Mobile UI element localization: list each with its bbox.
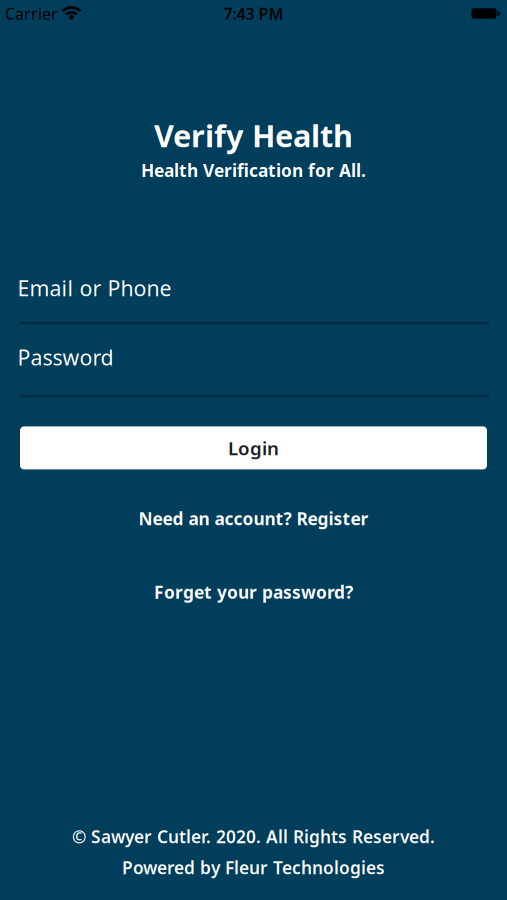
- staticText: Carrier: [5, 3, 58, 24]
- button[interactable]: Login: [0, 426, 507, 469]
- staticText: 7:43 PM: [223, 3, 283, 24]
- staticText: © Sawyer Cutler. 2020. All Rights Reserv…: [72, 825, 435, 848]
- staticText: Verify Health: [154, 115, 353, 156]
- button[interactable]: Email or Phone: [0, 274, 507, 325]
- staticText: Password: [17, 343, 113, 371]
- staticText: Login: [228, 435, 279, 460]
- staticText: Forget your password?: [154, 580, 353, 603]
- button[interactable]: Need an account? Register: [138, 507, 368, 530]
- staticText: Powered by Fleur Technologies: [122, 856, 385, 879]
- button[interactable]: Password: [0, 343, 507, 398]
- staticText: Need an account? Register: [138, 507, 368, 530]
- staticText: Health Verification for All.: [141, 159, 366, 182]
- button[interactable]: Forget your password?: [154, 580, 353, 603]
- staticText: Email or Phone: [17, 274, 171, 302]
